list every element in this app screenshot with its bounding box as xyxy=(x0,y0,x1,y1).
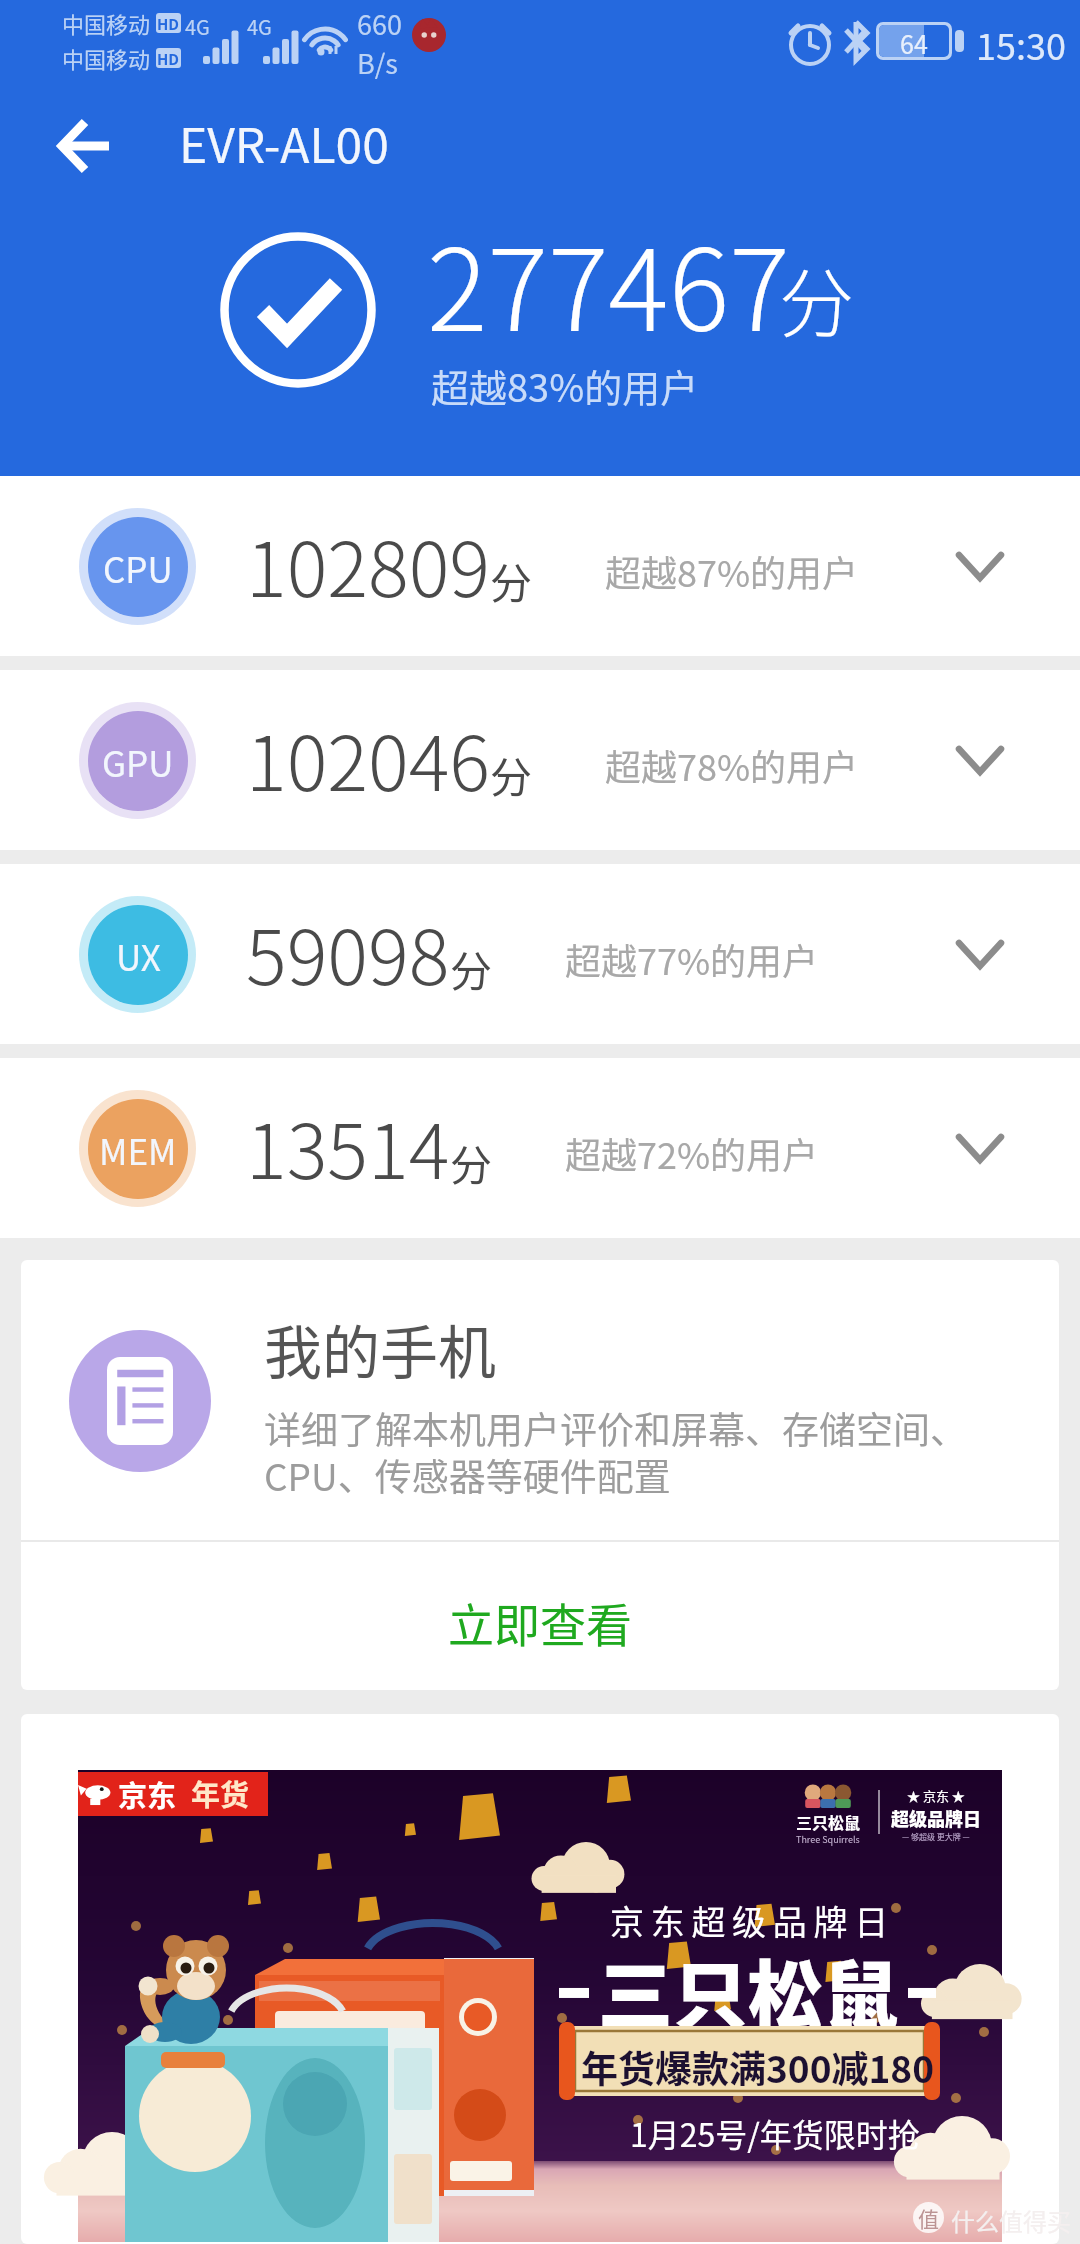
button[interactable]: Expand details xyxy=(925,899,1035,1009)
staticText: HD xyxy=(157,13,180,33)
staticText: 102809 xyxy=(246,509,490,619)
staticText: 超越72%的用户 xyxy=(565,1127,819,1179)
button[interactable]: CPU xyxy=(0,476,1080,656)
staticText: HD xyxy=(157,48,180,68)
staticText: 分 xyxy=(450,1132,493,1193)
staticText: 三只松鼠 xyxy=(598,1936,899,2045)
staticText: 年货节 xyxy=(191,1772,268,1816)
staticText: 三只松鼠 xyxy=(796,1810,861,1833)
staticText: 京东超级品牌日 xyxy=(610,1896,895,1945)
staticText: B/s xyxy=(357,43,398,82)
staticText: 超级品牌日 xyxy=(891,1805,981,1831)
staticText: GPU xyxy=(102,736,174,787)
staticText: 分 xyxy=(490,744,533,805)
button[interactable]: 立即查看 xyxy=(21,1542,1059,1690)
staticText: 立即查看 xyxy=(448,1589,632,1656)
staticText: 超越78%的用户 xyxy=(605,739,859,791)
staticText: 分 xyxy=(490,550,533,611)
button[interactable]: UX xyxy=(0,864,1080,1044)
staticText: 超越87%的用户 xyxy=(605,545,859,597)
staticText: UX xyxy=(116,930,161,981)
staticText: 13514 xyxy=(246,1091,450,1201)
button[interactable]: Back xyxy=(33,94,137,198)
button[interactable]: Expand details xyxy=(925,1093,1035,1203)
staticText: — 够超级 更大牌 — xyxy=(902,1831,970,1843)
staticText: 中国移动 xyxy=(62,42,151,74)
staticText: 1月25号/年货限时抢 xyxy=(630,2110,920,2156)
staticText: 中国移动 xyxy=(62,7,151,39)
staticText: 4G xyxy=(185,12,210,41)
staticText: 64 xyxy=(900,25,928,57)
staticText: 660 xyxy=(357,4,402,43)
staticText: Three Squirrels xyxy=(796,1833,860,1846)
button[interactable]: Expand details xyxy=(925,705,1035,815)
staticText: 什么值得买 xyxy=(951,2203,1071,2238)
staticText: 59098 xyxy=(246,897,450,1007)
button[interactable]: 我的手机 xyxy=(21,1260,1059,1540)
staticText: 277467 xyxy=(427,200,790,364)
staticText: 分 xyxy=(779,244,855,353)
staticText: 15:30 xyxy=(976,18,1066,70)
staticText: MEM xyxy=(99,1124,177,1175)
button[interactable]: 京东 xyxy=(21,1714,1059,2244)
staticText: CPU xyxy=(103,542,173,593)
staticText: 超越77%的用户 xyxy=(565,933,819,985)
staticText: 超越83%的用户 xyxy=(431,358,699,413)
staticText: 详细了解本机用户评价和屏幕、存储空间、 CPU、传感器等硬件配置 xyxy=(264,1401,967,1502)
staticText: EVR-AL00 xyxy=(179,107,389,177)
staticText: 我的手机 xyxy=(264,1307,497,1391)
button[interactable]: Expand details xyxy=(925,511,1035,621)
button[interactable]: GPU xyxy=(0,670,1080,850)
button[interactable]: MEM xyxy=(0,1058,1080,1238)
staticText: ★ 京东 ★ xyxy=(907,1786,965,1805)
staticText: 4G xyxy=(247,12,272,41)
staticText: 年货爆款满300减180 xyxy=(581,2040,934,2094)
staticText: 值 xyxy=(918,2203,939,2233)
staticText: 京东 xyxy=(118,1773,177,1815)
staticText: 102046 xyxy=(246,703,490,813)
staticText: 分 xyxy=(450,938,493,999)
